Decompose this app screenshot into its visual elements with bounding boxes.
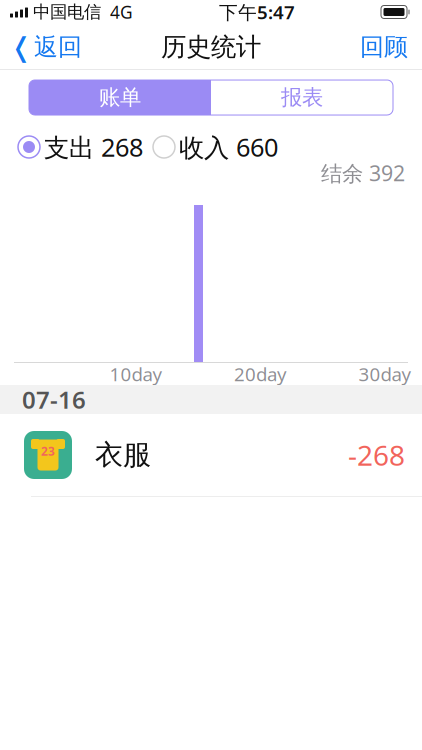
- staticText: 报表: [281, 84, 323, 111]
- button[interactable]: 回顾: [346, 24, 422, 70]
- button[interactable]: ❬: [0, 24, 92, 70]
- staticText: 30day: [358, 362, 411, 386]
- staticText: 回顾: [360, 32, 408, 62]
- staticText: 10day: [109, 362, 162, 386]
- staticText: 中国电信: [33, 1, 101, 23]
- button[interactable]: 收入 660: [143, 130, 278, 164]
- staticText: 账单: [99, 84, 141, 111]
- staticText: ❬: [10, 32, 32, 62]
- staticText: 4G: [110, 0, 133, 23]
- staticText: 20day: [234, 362, 287, 386]
- staticText: -268: [348, 436, 405, 474]
- staticText: 07-16: [22, 384, 86, 415]
- button[interactable]: 报表: [211, 80, 393, 115]
- staticText: 返回: [34, 32, 82, 62]
- staticText: 衣服: [95, 438, 151, 472]
- staticText: 结余 392: [321, 159, 405, 187]
- button[interactable]: 账单: [29, 80, 211, 115]
- staticText: 支出 268: [44, 130, 143, 164]
- button[interactable]: 23: [0, 414, 422, 496]
- button[interactable]: 支出 268: [18, 130, 143, 164]
- staticText: 收入 660: [179, 130, 278, 164]
- staticText: 下午5:47: [219, 0, 295, 24]
- staticText: 历史统计: [161, 31, 261, 62]
- staticText: 23: [41, 443, 55, 459]
